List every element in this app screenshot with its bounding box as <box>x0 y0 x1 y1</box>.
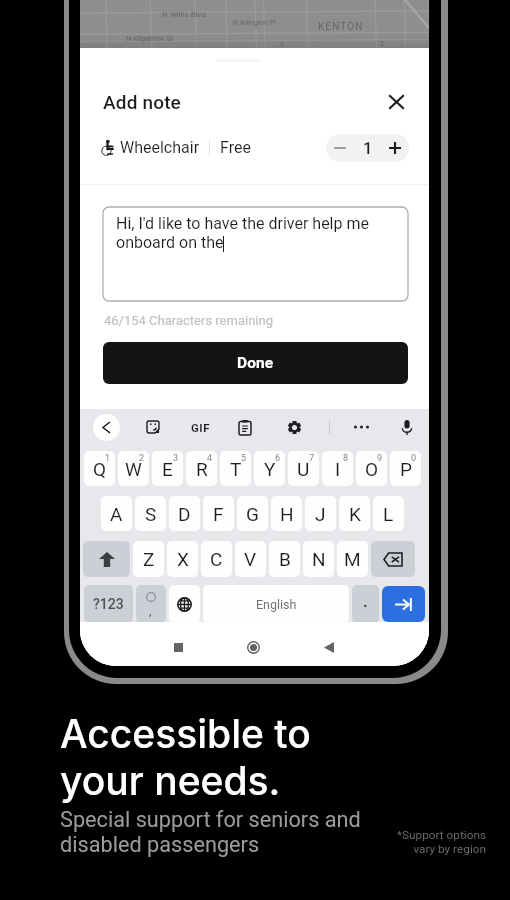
button[interactable]: C <box>201 541 232 577</box>
staticText: N <box>312 548 326 570</box>
button[interactable]: Enter <box>382 586 425 622</box>
staticText: Add note <box>103 91 181 113</box>
staticText: 8 <box>343 453 349 464</box>
staticText: Hi, I'd like to have the driver help me … <box>116 214 378 252</box>
staticText: V <box>244 548 257 570</box>
button[interactable]: Increase <box>381 134 409 162</box>
staticText: Wheelchair <box>120 138 200 157</box>
staticText: *Support options <box>396 828 486 842</box>
button[interactable]: Backspace <box>371 541 415 577</box>
staticText: KENTON <box>318 21 364 33</box>
button[interactable]: Close <box>383 89 409 115</box>
button[interactable]: Y <box>254 451 285 486</box>
button[interactable]: P <box>390 451 421 486</box>
staticText: 0 <box>411 453 417 464</box>
button[interactable]: . <box>352 585 379 623</box>
staticText: D <box>178 503 191 525</box>
staticText: disabled passengers <box>60 832 260 857</box>
staticText: F <box>213 503 224 525</box>
button[interactable]: K <box>339 496 370 531</box>
button[interactable]: I <box>322 451 353 486</box>
staticText: , <box>149 604 152 618</box>
button[interactable]: Clipboard <box>235 417 255 437</box>
staticText: English <box>256 597 297 612</box>
button[interactable]: Shift <box>83 541 130 577</box>
button[interactable]: X <box>167 541 198 577</box>
button[interactable]: Back <box>317 635 341 659</box>
staticText: 4 <box>207 453 213 464</box>
staticText: Free <box>220 138 251 157</box>
button[interactable]: More options <box>351 417 371 437</box>
button[interactable]: A <box>101 496 132 531</box>
button[interactable]: Back <box>93 414 120 441</box>
button[interactable]: J <box>305 496 336 531</box>
button[interactable]: T <box>220 451 251 486</box>
staticText: Special support for seniors and <box>60 807 361 832</box>
button[interactable]: Hi, I'd like to have the driver help me … <box>103 207 408 301</box>
staticText: vary by region <box>413 842 486 856</box>
button[interactable]: M <box>337 541 368 577</box>
staticText: W <box>125 458 142 480</box>
button[interactable]: Z <box>133 541 164 577</box>
button[interactable]: S <box>135 496 166 531</box>
staticText: M <box>344 548 361 570</box>
staticText: GIF <box>191 421 210 434</box>
staticText: K <box>349 503 361 525</box>
button[interactable]: Wheelchair <box>102 134 251 160</box>
staticText: 2 <box>139 453 145 464</box>
staticText: . <box>363 591 368 611</box>
button[interactable]: E <box>152 451 183 486</box>
button[interactable]: B <box>269 541 300 577</box>
staticText: A <box>110 503 123 525</box>
staticText: 1 <box>363 139 373 158</box>
staticText: X <box>177 548 189 570</box>
staticText: 2 <box>380 40 384 48</box>
button[interactable]: N <box>303 541 334 577</box>
button[interactable]: English <box>203 585 349 623</box>
button[interactable]: O <box>356 451 387 486</box>
staticText: C <box>210 548 223 570</box>
staticText: H <box>280 503 294 525</box>
button[interactable]: Language <box>169 585 200 623</box>
staticText: G <box>246 503 259 525</box>
button[interactable]: W <box>118 451 149 486</box>
button[interactable]: Done <box>103 342 408 384</box>
staticText: 7 <box>309 453 315 464</box>
button[interactable]: Recents <box>166 635 190 659</box>
staticText: E <box>162 458 173 480</box>
staticText: 1 <box>105 453 111 464</box>
staticText: Y <box>264 458 276 480</box>
staticText: 6 <box>275 453 281 464</box>
staticText: 3 <box>173 453 179 464</box>
button[interactable]: F <box>203 496 234 531</box>
button[interactable]: Home <box>241 635 265 659</box>
staticText: I <box>335 458 341 480</box>
button[interactable]: ?123 <box>84 585 133 623</box>
button[interactable]: Decrease <box>326 134 354 162</box>
button[interactable]: Voice input <box>397 417 417 437</box>
staticText: Q <box>93 458 107 480</box>
staticText: R <box>196 458 208 480</box>
button[interactable]: Sticker <box>143 417 163 437</box>
staticText: your needs. <box>60 757 281 804</box>
button[interactable]: Settings <box>284 417 304 437</box>
staticText: L <box>383 503 394 525</box>
staticText: 9 <box>377 453 383 464</box>
button[interactable]: G <box>237 496 268 531</box>
button[interactable]: U <box>288 451 319 486</box>
button[interactable]: Emoji <box>136 585 166 623</box>
button[interactable]: Q <box>84 451 115 486</box>
button[interactable]: GIF <box>187 414 213 440</box>
staticText: N Arlington Pl <box>233 19 276 27</box>
staticText: Accessible to <box>60 710 311 757</box>
button[interactable]: H <box>271 496 302 531</box>
button[interactable]: V <box>235 541 266 577</box>
staticText: S <box>145 503 157 525</box>
staticText: N Willis Blvd <box>162 10 206 19</box>
staticText: T <box>230 458 242 480</box>
button[interactable]: R <box>186 451 217 486</box>
button[interactable]: D <box>169 496 200 531</box>
button[interactable]: L <box>373 496 404 531</box>
staticText: O <box>365 458 379 480</box>
staticText: P <box>400 458 412 480</box>
